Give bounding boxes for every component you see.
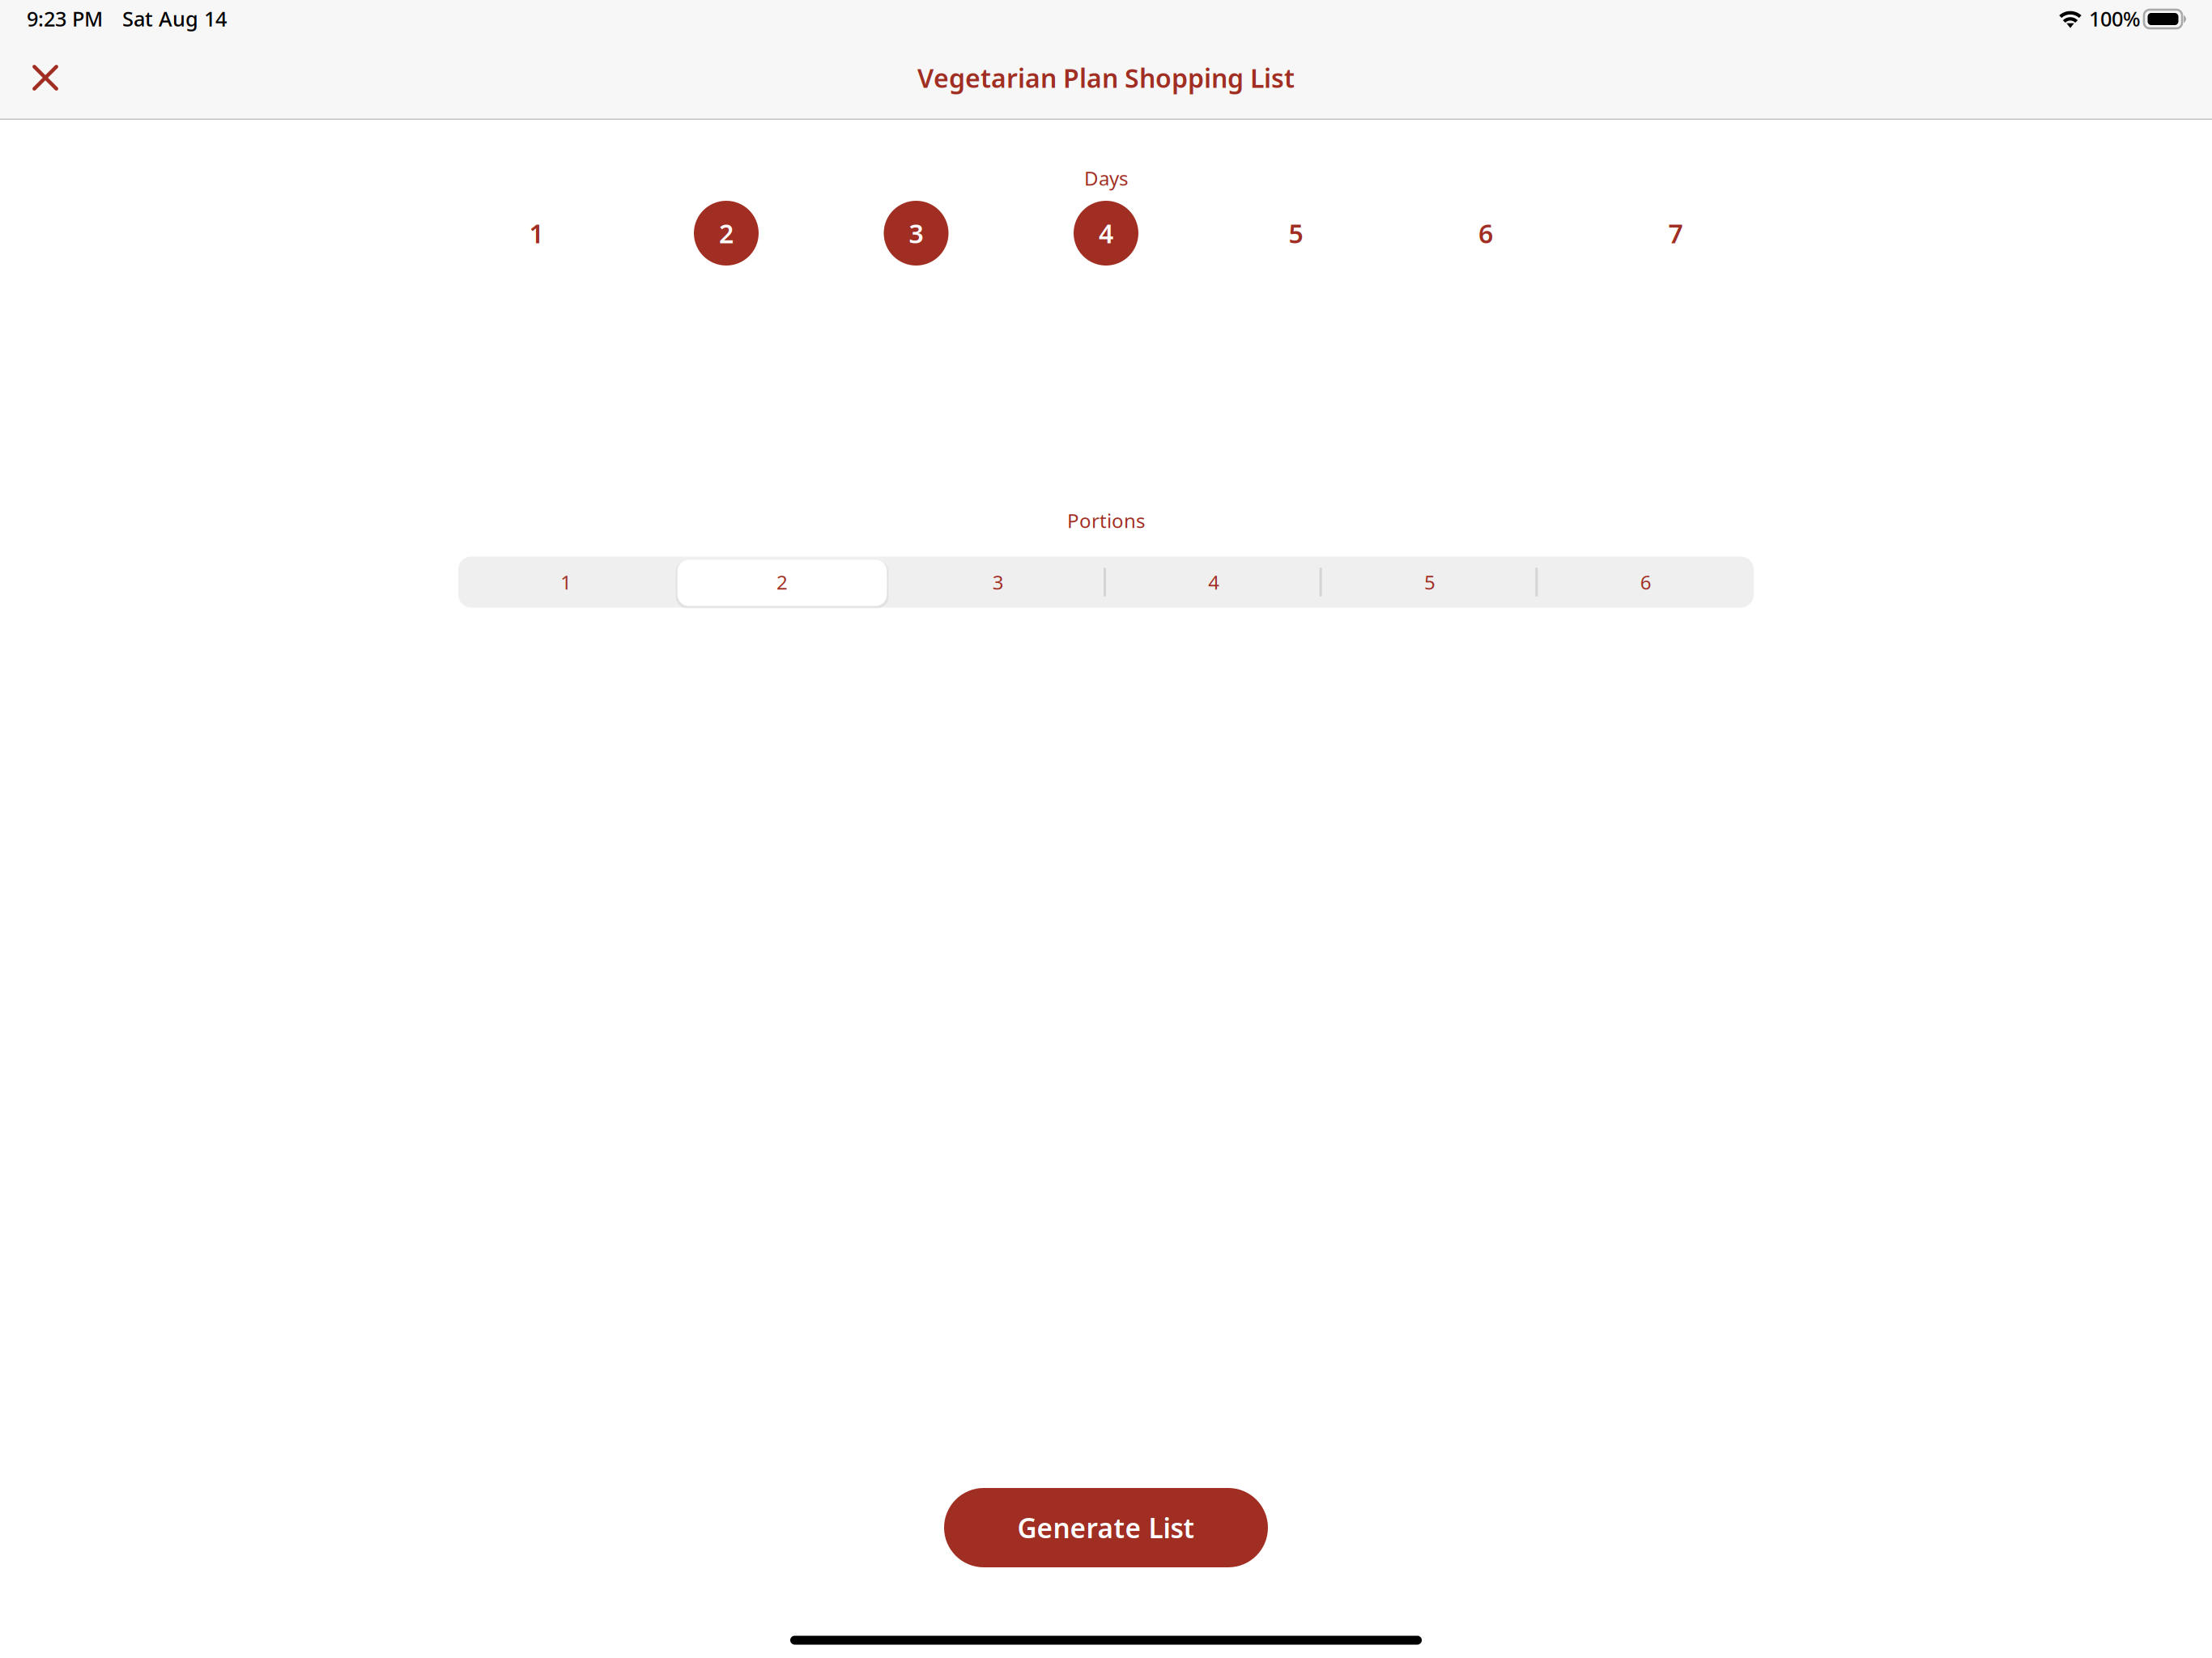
staticText: Sat Aug 14 <box>122 5 227 32</box>
button[interactable]: Close <box>15 48 75 108</box>
staticText: 4 <box>1099 216 1113 250</box>
button[interactable]: 1 <box>441 201 631 266</box>
staticText: 5 <box>1424 569 1436 595</box>
button[interactable]: 5 <box>1201 201 1391 266</box>
staticText: 100% <box>2089 5 2141 32</box>
button[interactable]: 6 <box>1538 557 1754 608</box>
button[interactable]: 2 <box>674 557 890 608</box>
button[interactable]: 7 <box>1581 201 1770 266</box>
staticText: 2 <box>719 216 734 250</box>
staticText: 3 <box>909 216 923 250</box>
staticText: 9:23 PM <box>27 5 103 32</box>
staticText: 6 <box>1640 569 1651 595</box>
staticText: 4 <box>1208 569 1220 595</box>
staticText: 1 <box>529 216 544 250</box>
staticText: 5 <box>1289 216 1303 250</box>
staticText: Days <box>1084 165 1128 191</box>
staticText: 2 <box>776 569 788 595</box>
staticText: 3 <box>992 569 1004 595</box>
staticText: 1 <box>561 569 572 595</box>
staticText: 7 <box>1668 216 1683 250</box>
button[interactable]: 3 <box>821 201 1011 266</box>
staticText: 6 <box>1478 216 1493 250</box>
staticText: Vegetarian Plan Shopping List <box>917 61 1295 95</box>
button[interactable]: 4 <box>1011 201 1201 266</box>
staticText: Portions <box>1067 508 1145 534</box>
staticText: Generate List <box>1017 1510 1195 1546</box>
button[interactable]: 4 <box>1106 557 1322 608</box>
button[interactable]: 6 <box>1391 201 1581 266</box>
button[interactable]: Generate List <box>944 1488 1268 1567</box>
button[interactable]: 5 <box>1322 557 1538 608</box>
button[interactable]: 2 <box>631 201 821 266</box>
button[interactable]: 1 <box>458 557 674 608</box>
button[interactable]: 3 <box>890 557 1106 608</box>
